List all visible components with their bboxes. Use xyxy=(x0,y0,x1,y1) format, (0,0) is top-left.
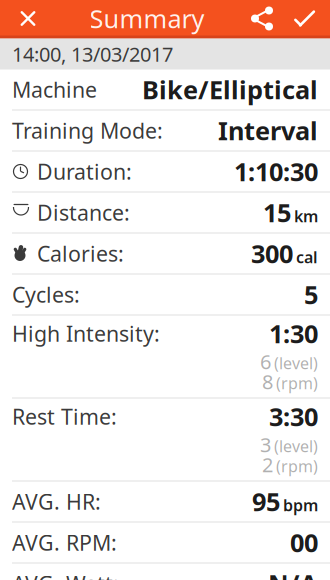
staticText: 5 xyxy=(304,278,318,311)
staticText: (rpm) xyxy=(276,455,318,477)
staticText: 300 xyxy=(251,237,293,270)
button[interactable]: Share xyxy=(242,0,282,38)
staticText: Bike/Elliptical xyxy=(142,73,318,106)
staticText: 2 xyxy=(262,451,273,478)
staticText: 3 xyxy=(260,431,271,458)
staticText: 15 xyxy=(263,196,291,229)
staticText: AVG. HR: xyxy=(12,487,101,516)
button[interactable]: Close xyxy=(4,0,52,38)
staticText: (rpm) xyxy=(276,372,318,394)
staticText: AVG. RPM: xyxy=(12,528,117,557)
button[interactable]: Done xyxy=(282,0,326,38)
staticText: AVG. Watt: xyxy=(12,569,119,580)
staticText: km xyxy=(294,205,318,227)
staticText: 95 xyxy=(252,485,280,518)
staticText: 1:10:30 xyxy=(234,155,318,188)
staticText: Cycles: xyxy=(12,280,80,309)
staticText: 3:30 xyxy=(269,400,318,433)
staticText: Interval xyxy=(218,114,318,147)
staticText: Distance: xyxy=(37,198,130,227)
staticText: 8 xyxy=(262,368,273,395)
staticText: High Intensity: xyxy=(12,319,160,348)
staticText: cal xyxy=(296,246,318,268)
staticText: Duration: xyxy=(37,157,132,186)
staticText: (level) xyxy=(274,352,318,374)
staticText: (level) xyxy=(274,435,318,457)
staticText: 6 xyxy=(260,348,271,375)
staticText: Machine xyxy=(12,75,97,104)
staticText: 1:30 xyxy=(269,317,318,350)
staticText: bpm xyxy=(283,494,318,516)
staticText: 00 xyxy=(290,526,318,559)
staticText: 14:00, 13/03/2017 xyxy=(12,41,173,67)
staticText: Summary xyxy=(89,2,204,35)
staticText: Training Mode: xyxy=(12,116,163,145)
staticText: N/A xyxy=(268,567,318,580)
staticText: Rest Time: xyxy=(12,402,117,431)
staticText: Calories: xyxy=(37,239,124,268)
